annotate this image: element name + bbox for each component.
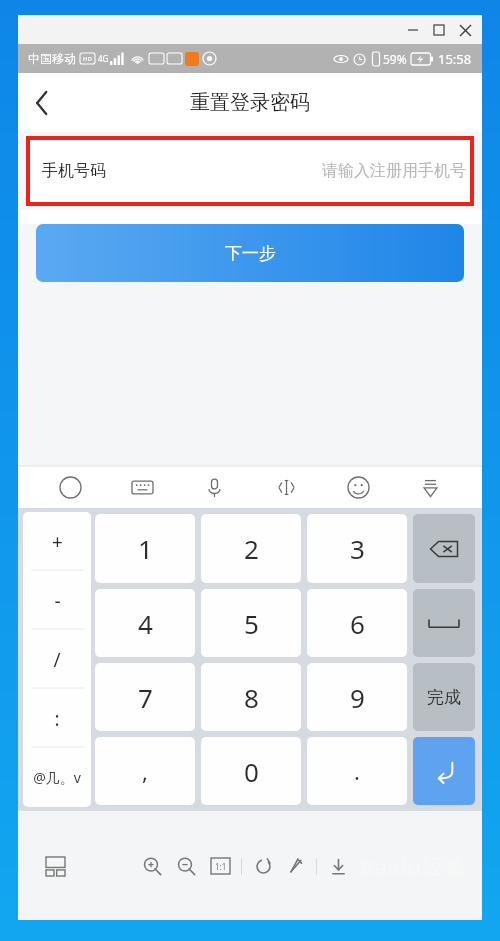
button[interactable]: 5 bbox=[201, 589, 301, 657]
button[interactable]: . bbox=[307, 737, 407, 805]
button[interactable]: 0 bbox=[201, 737, 301, 805]
button[interactable]: Download bbox=[323, 851, 353, 881]
staticText: + bbox=[52, 529, 63, 555]
staticText: @几。v bbox=[33, 768, 81, 787]
button[interactable]: Input method bbox=[50, 467, 90, 507]
staticText: 0 bbox=[244, 754, 259, 789]
button[interactable]: Voice input bbox=[194, 467, 234, 507]
staticText: 9 bbox=[350, 680, 365, 715]
button[interactable]: - bbox=[23, 571, 91, 630]
staticText: 中国移动 bbox=[28, 51, 76, 66]
staticText: 下一步 bbox=[225, 243, 276, 264]
staticText: , bbox=[142, 756, 148, 786]
button[interactable]: 9 bbox=[307, 663, 407, 731]
button[interactable]: 完成 bbox=[413, 663, 475, 731]
button[interactable]: , bbox=[95, 737, 195, 805]
button[interactable]: Hide keyboard bbox=[410, 467, 450, 507]
button[interactable]: Emoji bbox=[338, 467, 378, 507]
staticText: 7 bbox=[138, 680, 153, 715]
staticText: 重置登录密码 bbox=[190, 90, 310, 115]
staticText: 8 bbox=[244, 680, 259, 715]
staticText: 2 bbox=[244, 531, 259, 566]
button[interactable]: Rotate bbox=[248, 851, 278, 881]
staticText: 1:1 bbox=[215, 861, 227, 872]
button[interactable]: 1 bbox=[95, 514, 195, 583]
staticText: HD bbox=[83, 55, 92, 63]
staticText: 59% bbox=[383, 51, 407, 67]
staticText: / bbox=[53, 647, 61, 673]
button[interactable]: Close bbox=[452, 17, 478, 43]
button[interactable]: Keyboard bbox=[122, 467, 162, 507]
button[interactable]: Space bbox=[413, 589, 475, 657]
staticText: 6 bbox=[350, 606, 365, 641]
button[interactable]: Layout bbox=[40, 851, 70, 881]
button[interactable]: Move cursor bbox=[266, 467, 306, 507]
staticText: 4G bbox=[98, 53, 109, 64]
staticText: 1 bbox=[138, 531, 153, 566]
button[interactable]: 6 bbox=[307, 589, 407, 657]
button[interactable]: + bbox=[23, 512, 91, 571]
button[interactable]: Edit bbox=[280, 851, 310, 881]
staticText: . bbox=[354, 756, 360, 786]
staticText: 请输入注册用手机号 bbox=[322, 161, 466, 181]
button[interactable]: Zoom out bbox=[171, 851, 201, 881]
button[interactable]: / bbox=[23, 630, 91, 689]
button[interactable]: 2 bbox=[201, 514, 301, 583]
button[interactable]: 3 bbox=[307, 514, 407, 583]
button[interactable]: Actual size bbox=[205, 851, 235, 881]
button[interactable]: 8 bbox=[201, 663, 301, 731]
button[interactable]: 手机号码 bbox=[30, 140, 470, 202]
button[interactable]: Backspace bbox=[413, 514, 475, 583]
button[interactable]: Enter bbox=[413, 737, 475, 805]
button[interactable]: Zoom in bbox=[137, 851, 167, 881]
staticText: 3 bbox=[350, 531, 365, 566]
staticText: 15:58 bbox=[438, 50, 472, 68]
button[interactable]: 7 bbox=[95, 663, 195, 731]
button[interactable]: Maximize bbox=[426, 17, 452, 43]
button[interactable]: Minimize bbox=[400, 17, 426, 43]
button[interactable]: @几。v bbox=[23, 748, 91, 807]
staticText: : bbox=[54, 706, 60, 732]
staticText: 5 bbox=[244, 606, 259, 641]
staticText: 完成 bbox=[427, 687, 461, 708]
staticText: 手机号码 bbox=[42, 161, 106, 181]
button[interactable]: Back bbox=[18, 79, 66, 127]
staticText: 4 bbox=[138, 606, 153, 641]
button[interactable]: 4 bbox=[95, 589, 195, 657]
staticText: - bbox=[54, 588, 61, 614]
button[interactable]: : bbox=[23, 689, 91, 748]
button[interactable]: 下一步 bbox=[36, 224, 464, 282]
